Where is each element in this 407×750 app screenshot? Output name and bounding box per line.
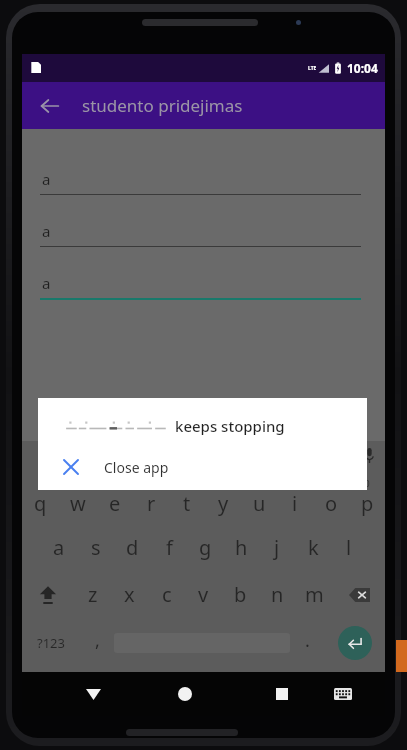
- button[interactable]: Switch keyboard: [312, 672, 373, 716]
- staticText: g: [199, 534, 212, 561]
- button[interactable]: Enter: [324, 618, 385, 668]
- staticText: and: [65, 446, 89, 464]
- button[interactable]: Space: [114, 618, 290, 668]
- button[interactable]: n: [259, 571, 296, 618]
- staticText: z: [88, 581, 98, 608]
- button[interactable]: 0: [349, 477, 385, 524]
- button[interactable]: Shift: [22, 571, 74, 618]
- button[interactable]: 5: [169, 477, 205, 524]
- button[interactable]: 8: [277, 477, 313, 524]
- staticText: j: [274, 534, 280, 561]
- staticText: ,: [95, 628, 100, 653]
- button[interactable]: 2: [59, 477, 96, 524]
- staticText: q: [34, 490, 47, 517]
- staticText: .: [305, 628, 310, 653]
- staticText: Close app: [104, 458, 169, 477]
- button[interactable]: a: [40, 273, 361, 300]
- staticText: x: [124, 581, 135, 608]
- staticText: u: [253, 490, 266, 517]
- staticText: o: [325, 490, 338, 517]
- button[interactable]: 9: [313, 477, 349, 524]
- staticText: LTE: [308, 65, 317, 72]
- staticText: p: [361, 490, 374, 517]
- button[interactable]: ?123: [22, 618, 80, 668]
- button[interactable]: Backspace: [333, 571, 385, 618]
- button[interactable]: d: [114, 524, 151, 571]
- staticText: a: [42, 169, 51, 189]
- button[interactable]: x: [111, 571, 148, 618]
- button[interactable]: Recents: [251, 672, 312, 716]
- staticText: a: [42, 221, 51, 241]
- button[interactable]: Back: [28, 84, 72, 128]
- staticText: h: [235, 534, 248, 561]
- button[interactable]: m: [296, 571, 333, 618]
- staticText: 10:04: [347, 60, 378, 76]
- button[interactable]: Voice input: [353, 441, 385, 469]
- button[interactable]: 7: [241, 477, 277, 524]
- staticText: y: [218, 490, 229, 517]
- staticText: i: [292, 490, 298, 517]
- staticText: m: [305, 581, 324, 608]
- button[interactable]: b: [222, 571, 259, 618]
- button[interactable]: s: [77, 524, 114, 571]
- staticText: w: [70, 490, 86, 517]
- button[interactable]: a: [40, 169, 361, 195]
- staticText: s: [91, 534, 101, 561]
- button[interactable]: a: [40, 524, 77, 571]
- button[interactable]: f: [151, 524, 187, 571]
- staticText: v: [198, 581, 209, 608]
- staticText: 0: [365, 478, 370, 489]
- button[interactable]: and: [22, 441, 131, 469]
- staticText: d: [126, 534, 139, 561]
- button[interactable]: l: [331, 524, 367, 571]
- staticText: r: [147, 490, 156, 517]
- button[interactable]: Hide keyboard: [63, 672, 124, 716]
- button[interactable]: h: [223, 524, 259, 571]
- staticText: ?123: [37, 634, 65, 652]
- button[interactable]: 1: [22, 477, 59, 524]
- button[interactable]: j: [259, 524, 295, 571]
- button[interactable]: v: [185, 571, 222, 618]
- staticText: c: [162, 581, 172, 608]
- button[interactable]: Close app: [38, 450, 367, 484]
- staticText: keeps stopping: [175, 416, 285, 436]
- button[interactable]: z: [74, 571, 111, 618]
- button[interactable]: 6: [205, 477, 241, 524]
- staticText: n: [271, 581, 284, 608]
- staticText: k: [308, 534, 319, 561]
- button[interactable]: k: [295, 524, 331, 571]
- staticText: l: [346, 534, 352, 561]
- button[interactable]: c: [148, 571, 185, 618]
- button[interactable]: 3: [96, 477, 133, 524]
- staticText: e: [109, 490, 121, 517]
- staticText: a: [53, 534, 65, 561]
- staticText: studento pridejimas: [82, 94, 243, 117]
- staticText: f: [166, 534, 173, 561]
- staticText: b: [234, 581, 247, 608]
- button[interactable]: 4: [133, 477, 169, 524]
- button[interactable]: a: [40, 221, 361, 247]
- button[interactable]: g: [187, 524, 223, 571]
- button[interactable]: Home: [154, 672, 215, 716]
- staticText: a: [42, 273, 51, 293]
- button[interactable]: a: [132, 441, 242, 469]
- staticText: t: [183, 490, 191, 517]
